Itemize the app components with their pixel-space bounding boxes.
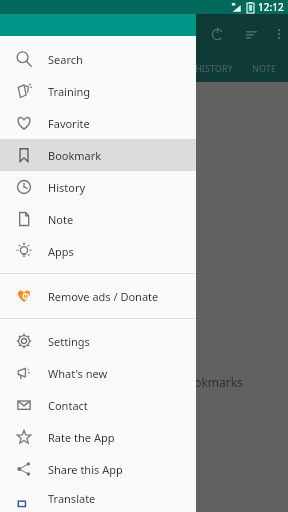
staticText: Remove ads / Donate bbox=[48, 289, 159, 304]
staticText: Contact bbox=[48, 398, 88, 413]
button[interactable]: Settings bbox=[0, 325, 196, 357]
staticText: Translate bbox=[48, 491, 96, 506]
button[interactable]: Contact bbox=[0, 389, 196, 421]
staticText: History bbox=[48, 180, 86, 195]
button[interactable]: NOTE bbox=[240, 54, 288, 82]
button[interactable]: Rate the App bbox=[0, 421, 196, 453]
staticText: What's new bbox=[48, 366, 108, 381]
button[interactable]: History bbox=[0, 171, 196, 203]
staticText: No bookmarks bbox=[160, 374, 243, 390]
staticText: Settings bbox=[48, 334, 90, 349]
staticText: Note bbox=[48, 212, 74, 227]
button[interactable]: Refresh bbox=[204, 21, 230, 47]
button[interactable]: Favorite bbox=[0, 107, 196, 139]
staticText: Rate the App bbox=[48, 430, 115, 445]
staticText: Bookmark bbox=[48, 148, 102, 163]
button[interactable]: Translate bbox=[0, 485, 196, 512]
button[interactable]: Training bbox=[0, 75, 196, 107]
staticText: Favorite bbox=[48, 116, 90, 131]
staticText: NOTE bbox=[252, 62, 276, 74]
button[interactable]: Sort bbox=[238, 21, 264, 47]
staticText: HISTORY bbox=[195, 62, 233, 74]
staticText: Apps bbox=[48, 244, 74, 259]
button[interactable]: What's new bbox=[0, 357, 196, 389]
staticText: Share this App bbox=[48, 462, 123, 477]
button[interactable]: More options bbox=[270, 21, 288, 47]
staticText: 12:12 bbox=[258, 0, 284, 14]
button[interactable]: Apps bbox=[0, 235, 196, 267]
button[interactable]: HISTORY bbox=[188, 54, 240, 82]
staticText: Search bbox=[48, 52, 83, 67]
button[interactable]: Share this App bbox=[0, 453, 196, 485]
button[interactable]: Remove ads / Donate bbox=[0, 280, 196, 312]
button[interactable]: Note bbox=[0, 203, 196, 235]
button[interactable]: Search bbox=[0, 43, 196, 75]
button[interactable]: Bookmark bbox=[0, 139, 196, 171]
staticText: Training bbox=[48, 84, 91, 99]
